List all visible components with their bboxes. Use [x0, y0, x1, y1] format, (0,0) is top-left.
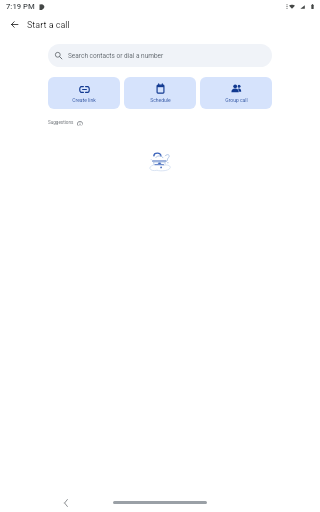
- button[interactable]: Create link: [48, 77, 120, 109]
- button[interactable]: Back: [58, 495, 74, 511]
- button[interactable]: About suggestions: [76, 119, 83, 126]
- button[interactable]: Schedule: [124, 77, 196, 109]
- staticText: Suggestions: [48, 120, 74, 125]
- staticText: Start a call: [27, 20, 70, 31]
- button[interactable]: Back: [4, 15, 25, 36]
- staticText: Schedule: [150, 97, 171, 103]
- button[interactable]: Search contacts or dial a number: [48, 44, 272, 67]
- staticText: Create link: [72, 97, 96, 103]
- staticText: Group call: [225, 97, 248, 103]
- staticText: 7:19 PM: [6, 2, 35, 11]
- button[interactable]: Group call: [200, 77, 272, 109]
- staticText: Search contacts or dial a number: [68, 52, 164, 60]
